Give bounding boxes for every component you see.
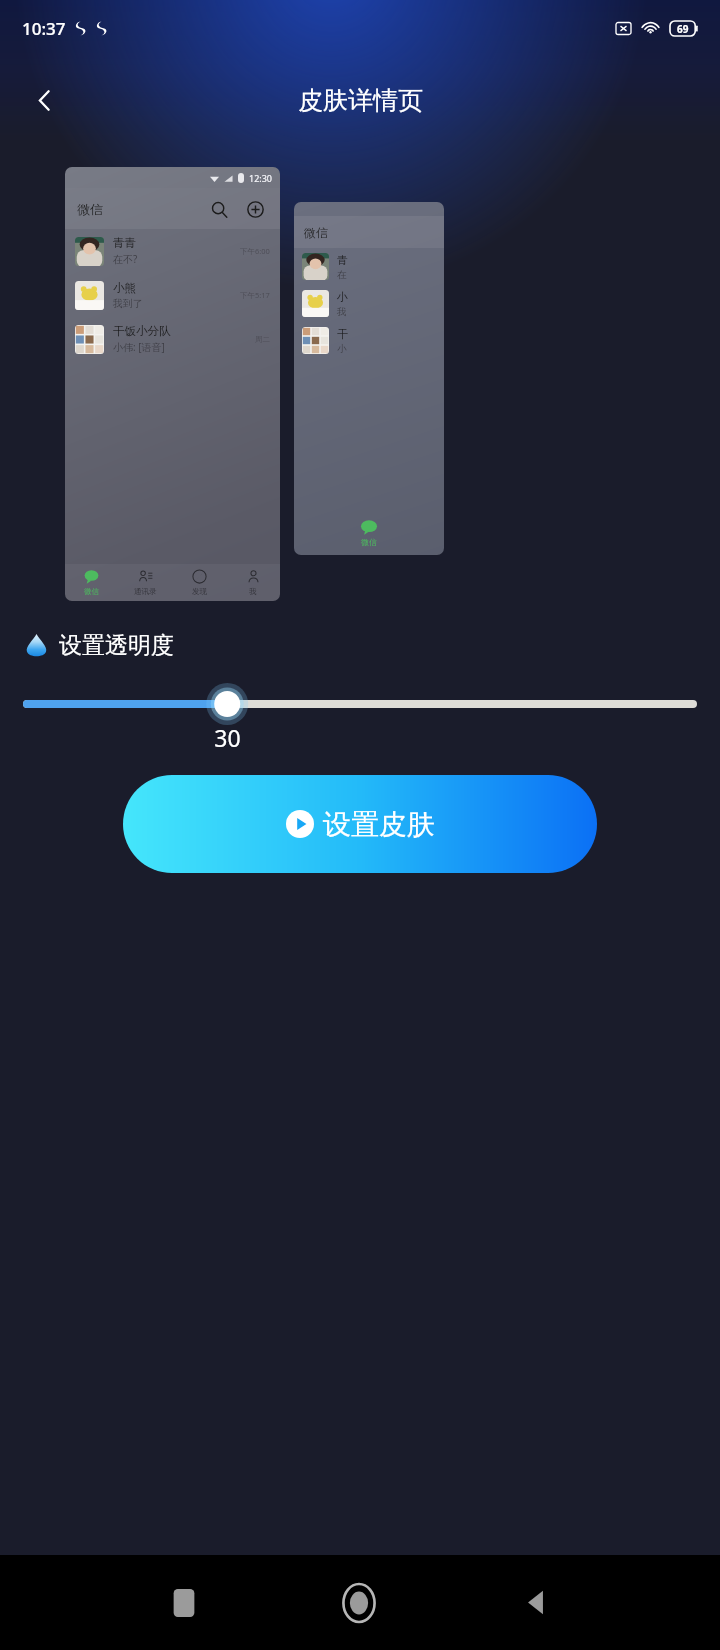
staticText: 设置透明度 <box>59 631 174 660</box>
staticText: 小 <box>337 343 347 355</box>
button[interactable]: Add <box>242 196 268 222</box>
staticText: 12:30 <box>249 172 273 184</box>
button[interactable]: 发现 <box>172 564 226 601</box>
staticText: 我 <box>337 306 347 318</box>
staticText: 设置皮肤 <box>323 807 435 842</box>
button[interactable]: 小熊 <box>75 273 270 317</box>
staticText: 我到了 <box>113 297 143 310</box>
staticText: 下午6:00 <box>240 246 270 256</box>
button[interactable]: 我 <box>226 564 280 601</box>
button[interactable]: Back <box>447 1555 623 1650</box>
staticText: 通讯录 <box>134 587 157 596</box>
staticText: 我 <box>249 587 257 596</box>
button[interactable]: 微信 <box>294 202 444 555</box>
staticText: 微信 <box>84 587 99 596</box>
button[interactable]: Opacity slider <box>23 686 697 722</box>
staticText: 周二 <box>255 335 270 344</box>
button[interactable]: Back <box>18 74 70 126</box>
button[interactable]: Search <box>206 196 232 222</box>
button[interactable]: 干 <box>302 322 444 359</box>
button[interactable]: 设置透明度 <box>24 631 174 660</box>
staticText: 小熊 <box>113 281 136 295</box>
staticText: 微信 <box>77 201 103 217</box>
staticText: 发现 <box>192 587 207 596</box>
button[interactable]: 设置皮肤 <box>123 775 597 873</box>
button[interactable]: 微信 <box>65 564 118 601</box>
button[interactable]: 青 <box>302 248 444 285</box>
button[interactable]: 通讯录 <box>118 564 172 601</box>
staticText: 青 <box>337 253 348 267</box>
staticText: 在不? <box>113 252 138 266</box>
button[interactable]: Recents <box>96 1555 271 1650</box>
button[interactable]: 青青 <box>75 229 270 273</box>
staticText: 在 <box>337 269 347 281</box>
staticText: 微信 <box>304 225 328 240</box>
button[interactable]: 12:30 <box>65 167 280 601</box>
staticText: 微信 <box>361 537 377 547</box>
staticText: 干 <box>337 327 348 341</box>
staticText: 干饭小分队 <box>113 324 171 338</box>
button[interactable]: Home <box>271 1555 447 1650</box>
staticText: 30 <box>214 722 241 753</box>
staticText: 小 <box>337 290 348 304</box>
staticText: 69 <box>677 22 689 36</box>
staticText: 青青 <box>113 236 136 250</box>
button[interactable]: 干饭小分队 <box>75 317 270 361</box>
staticText: 小伟: [语音] <box>113 340 165 354</box>
staticText: 10:37 <box>22 17 66 40</box>
staticText: 皮肤详情页 <box>298 85 423 116</box>
staticText: 下午5:17 <box>240 290 270 300</box>
button[interactable]: 小 <box>302 285 444 322</box>
